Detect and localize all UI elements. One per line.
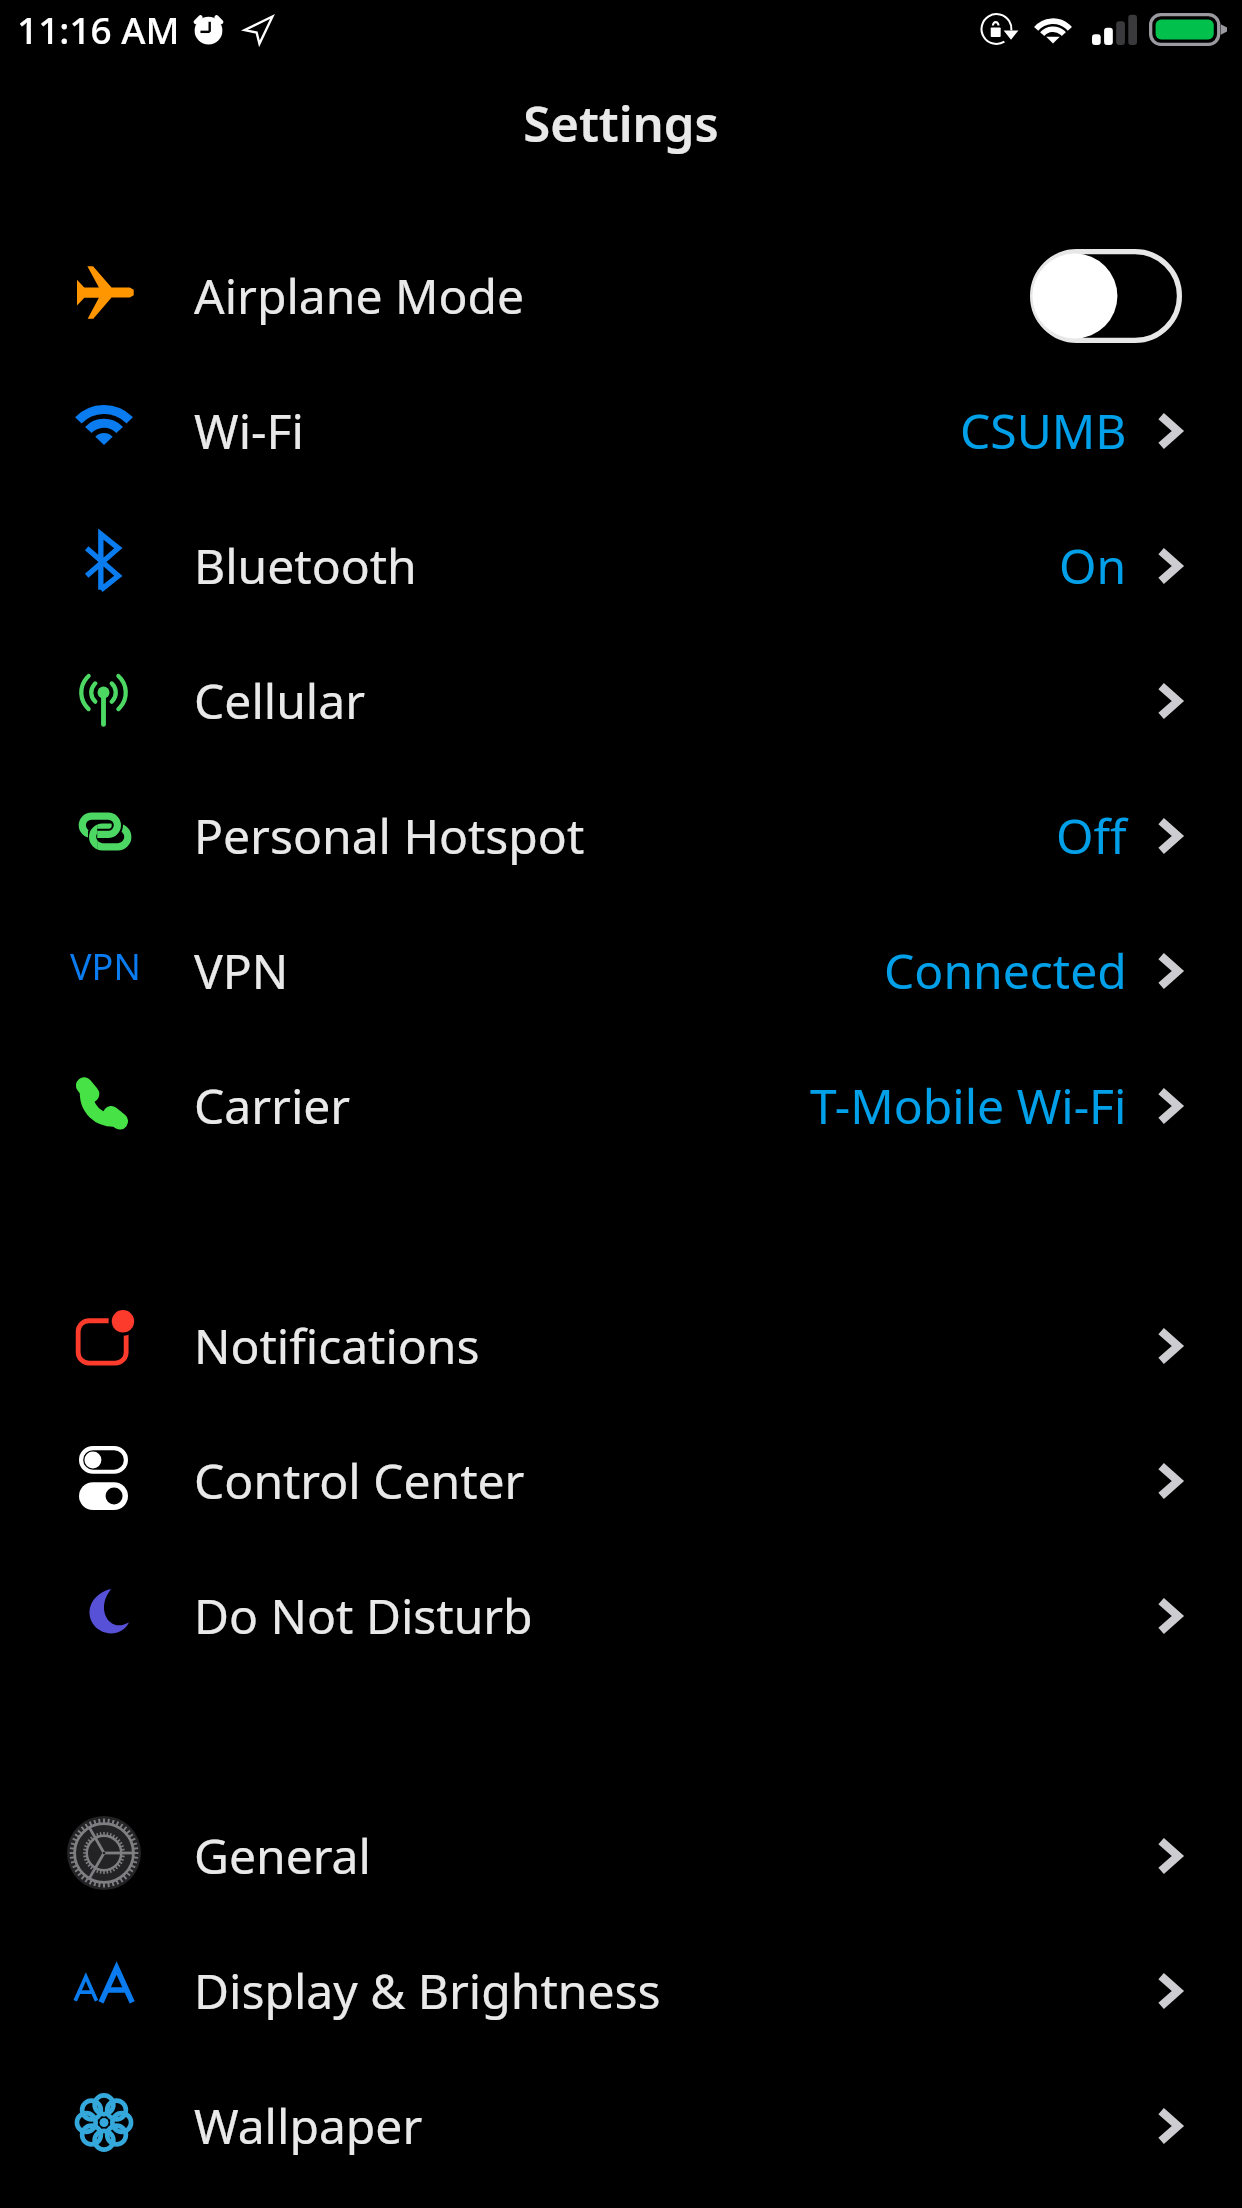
button[interactable]: Display & Brightness [0, 1923, 1242, 2058]
other: Open General [1157, 1836, 1182, 1876]
staticText: T-Mobile Wi-Fi [810, 1073, 1127, 1138]
other: Open Notifications [1157, 1326, 1182, 1366]
other: Open Display & Brightness [1157, 1971, 1182, 2011]
button[interactable]: Airplane Mode [0, 228, 1242, 363]
other: Open Control Center [1157, 1461, 1182, 1501]
button[interactable]: Notifications [0, 1278, 1242, 1413]
staticText: Off [1056, 803, 1127, 868]
staticText: Do Not Disturb [194, 1583, 533, 1648]
button[interactable]: Bluetooth [0, 498, 1242, 633]
staticText: Carrier [194, 1073, 351, 1138]
staticText: Settings [523, 90, 719, 157]
button[interactable]: Do Not Disturb [0, 1548, 1242, 1683]
other: Open Wi-Fi [1157, 411, 1182, 451]
other: Open Cellular [1157, 681, 1182, 721]
button[interactable]: VPN [0, 903, 1242, 1038]
staticText: Control Center [194, 1448, 525, 1513]
staticText: Wi-Fi [194, 398, 304, 463]
button[interactable]: Cellular [0, 633, 1242, 768]
button[interactable]: Control Center [0, 1413, 1242, 1548]
staticText: CSUMB [960, 398, 1127, 463]
staticText: VPN [194, 938, 289, 1003]
other: Open Wallpaper [1157, 2106, 1182, 2146]
staticText: On [1059, 533, 1127, 598]
staticText: Notifications [194, 1313, 480, 1378]
button[interactable]: Carrier [0, 1038, 1242, 1173]
other: Open VPN [1157, 951, 1182, 991]
button[interactable]: General [0, 1788, 1242, 1923]
other: Open Bluetooth [1157, 546, 1182, 586]
button[interactable]: Wi-Fi [0, 363, 1242, 498]
other: Open Carrier [1157, 1086, 1182, 1126]
staticText: Bluetooth [194, 533, 417, 598]
other: Open Do Not Disturb [1157, 1596, 1182, 1636]
staticText: Airplane Mode [194, 263, 525, 328]
button[interactable]: Personal Hotspot [0, 768, 1242, 903]
staticText: Connected [884, 938, 1127, 1003]
staticText: 11:16 AM [17, 4, 180, 54]
staticText: Personal Hotspot [194, 803, 585, 868]
staticText: VPN [70, 942, 141, 991]
staticText: Display & Brightness [194, 1958, 661, 2023]
staticText: Wallpaper [194, 2093, 423, 2158]
staticText: Cellular [194, 668, 365, 733]
staticText: General [194, 1823, 371, 1888]
button[interactable]: Airplane Mode toggle, off [1030, 249, 1182, 343]
button[interactable]: Wallpaper [0, 2058, 1242, 2193]
other: Open Personal Hotspot [1157, 816, 1182, 856]
